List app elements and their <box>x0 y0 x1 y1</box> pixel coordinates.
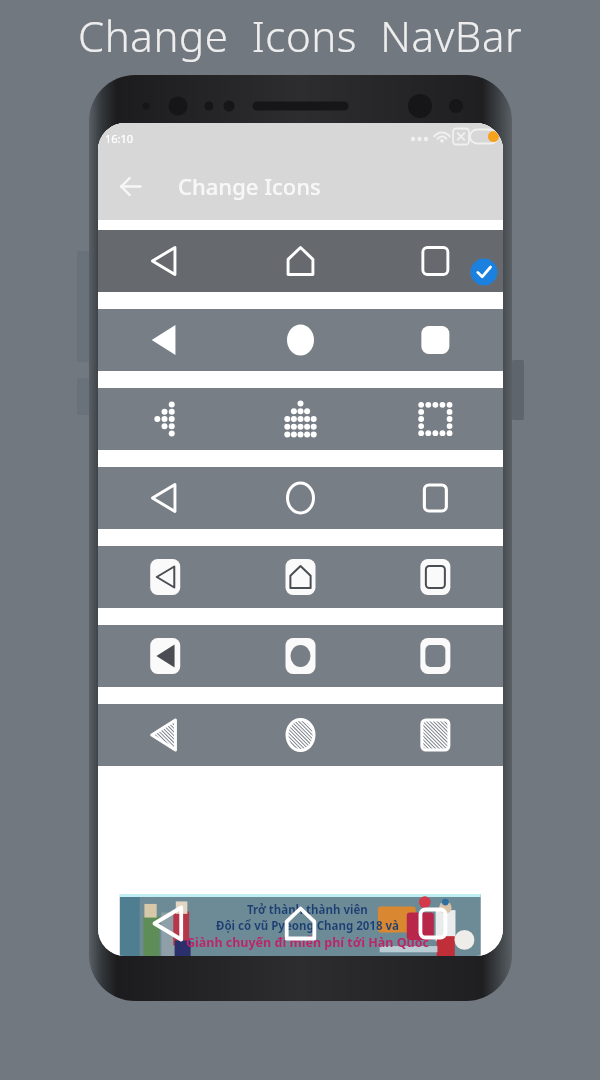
button[interactable]: Navigation bar icon set 4 <box>98 467 503 529</box>
button[interactable]: Back <box>108 164 152 208</box>
button[interactable]: Navigation bar icon set 6 <box>98 625 503 687</box>
button[interactable]: Navigation bar icon set 5 <box>98 546 503 608</box>
button[interactable]: Navigation bar icon set 3 <box>98 388 503 450</box>
staticText: Giành chuyến đi miễn phí tới Hàn Quốc <box>186 934 429 951</box>
staticText: Đội cổ vũ Pyeong Chang 2018 và <box>216 918 399 934</box>
staticText: Change Icons <box>178 171 321 201</box>
staticText: Change Icons NavBar <box>78 7 523 64</box>
button[interactable]: Navigation bar icon set 2 <box>98 309 503 371</box>
button[interactable]: Advertisement banner <box>98 894 503 956</box>
button[interactable]: Navigation bar icon set 7 <box>98 704 503 766</box>
staticText: 16:10 <box>105 131 134 146</box>
staticText: Trở thành thành viên <box>247 902 368 918</box>
button[interactable]: Navigation bar icon set 1 <box>98 230 503 292</box>
